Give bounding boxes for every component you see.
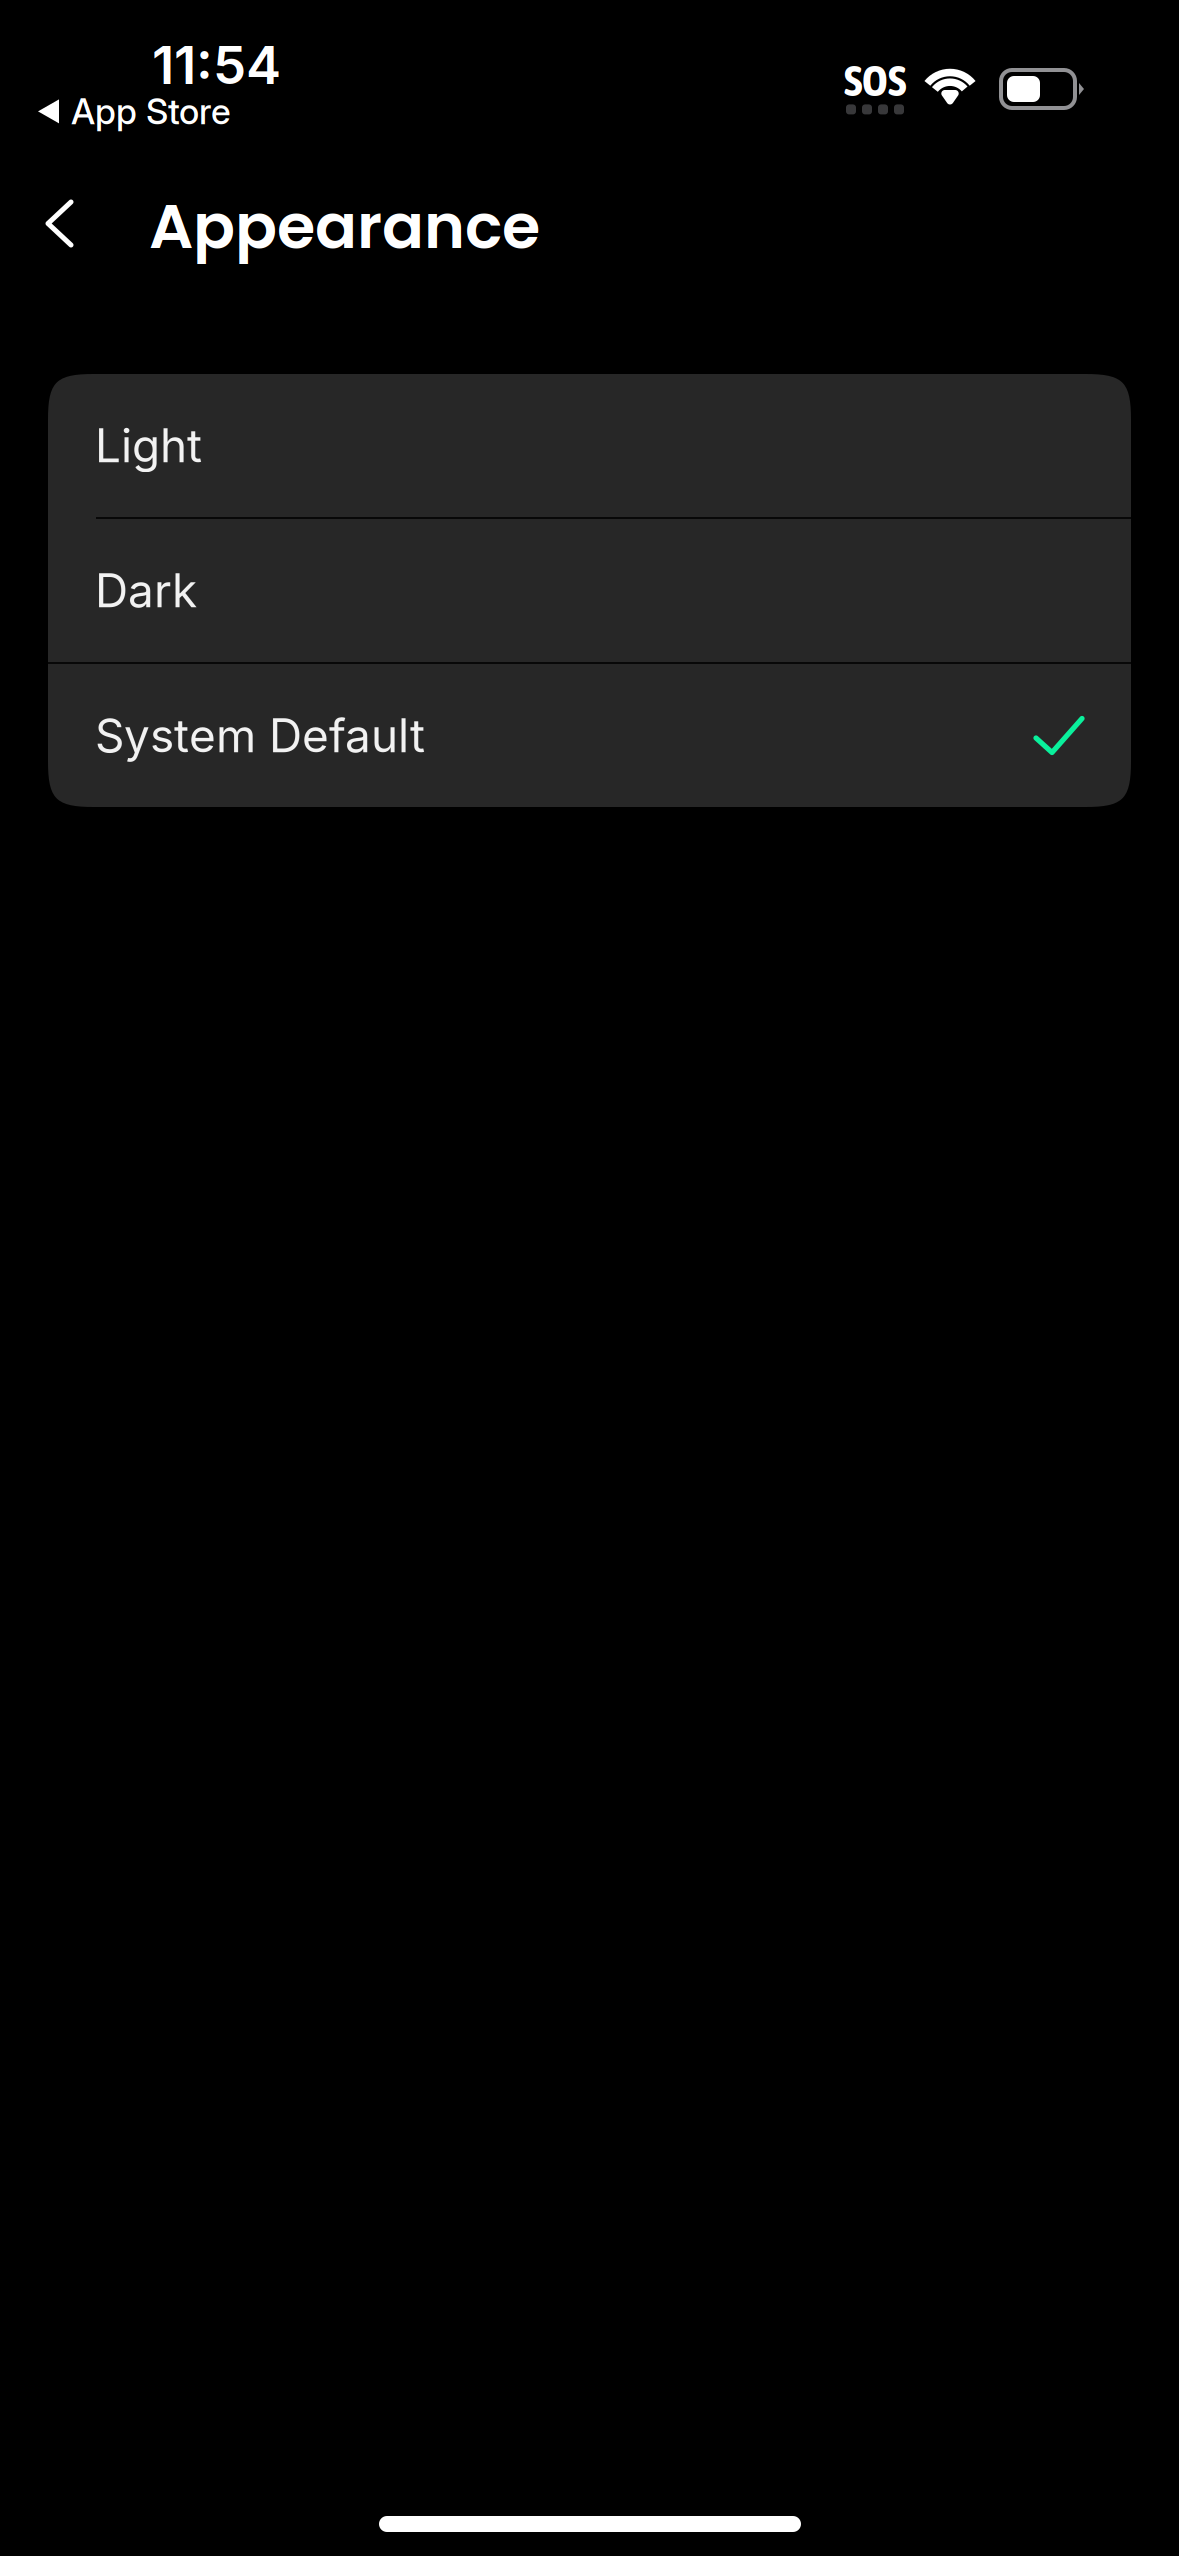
staticText: Appearance xyxy=(149,183,540,270)
staticText: Dark xyxy=(95,563,197,618)
button[interactable]: Dark xyxy=(48,519,1131,662)
button[interactable]: System Default xyxy=(48,664,1131,807)
staticText: System Default xyxy=(95,708,425,763)
staticText: App Store xyxy=(71,90,231,133)
staticText: SOS xyxy=(844,55,906,105)
staticText: 11:54 xyxy=(152,33,281,97)
button[interactable]: Back xyxy=(26,176,93,271)
button[interactable]: Light xyxy=(48,374,1131,517)
staticText: Light xyxy=(95,418,202,473)
